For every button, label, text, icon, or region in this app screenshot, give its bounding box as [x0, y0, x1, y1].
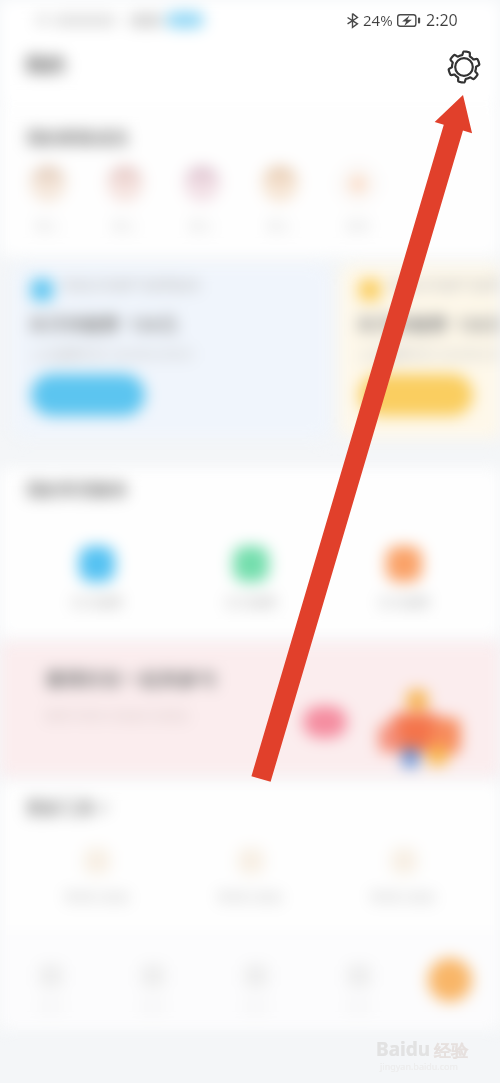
button[interactable]: 智能水电燃气缴费服务: [340, 264, 500, 438]
button[interactable]: 生活缴费: [20, 546, 174, 610]
staticText: 邀请好友一起来参与: [45, 668, 216, 692]
button[interactable]: Compose: [428, 958, 472, 1002]
button[interactable]: 常用工具名: [174, 848, 327, 905]
button[interactable]: Settings: [444, 47, 484, 87]
staticText: 经验: [434, 1041, 468, 1062]
staticText: 本月待缴费 126元: [357, 312, 500, 337]
button[interactable]: [359, 374, 473, 416]
button[interactable]: 生活缴费: [174, 546, 327, 610]
staticText: 2:20: [426, 9, 458, 31]
button[interactable]: 常用工具名: [327, 848, 480, 905]
staticText: 我的家庭成员: [26, 128, 128, 149]
button[interactable]: 家人: [163, 166, 241, 233]
button[interactable]: 常用工具名: [20, 848, 174, 905]
staticText: 24%: [363, 10, 393, 30]
staticText: 生活缴费: [71, 594, 123, 610]
button[interactable]: 邀请好友一起来参与: [0, 642, 500, 776]
button[interactable]: 家人: [86, 166, 163, 233]
staticText: 我的: [25, 53, 65, 78]
staticText: 生活缴费: [378, 594, 430, 610]
button[interactable]: 生活缴费: [327, 546, 480, 610]
staticText: 我的常用服务: [26, 480, 128, 501]
button[interactable]: 家人: [9, 166, 86, 233]
staticText: 上次缴费时间 2020年2月8日: [357, 345, 500, 363]
button[interactable]: 家人: [241, 166, 319, 233]
staticText: 更多工具 >: [26, 796, 109, 819]
button[interactable]: [31, 374, 145, 416]
staticText: jingyan.baidu.com: [380, 1060, 458, 1072]
button[interactable]: 智能水电燃气缴费服务: [12, 264, 330, 438]
button[interactable]: Add contact: [319, 166, 397, 233]
staticText: 本月待缴费 126元: [29, 312, 178, 337]
staticText: 智能水电燃气缴费服务: [390, 277, 500, 295]
button[interactable]: [303, 706, 347, 738]
staticText: Baidu: [376, 1036, 431, 1062]
staticText: 生活缴费: [225, 594, 277, 610]
